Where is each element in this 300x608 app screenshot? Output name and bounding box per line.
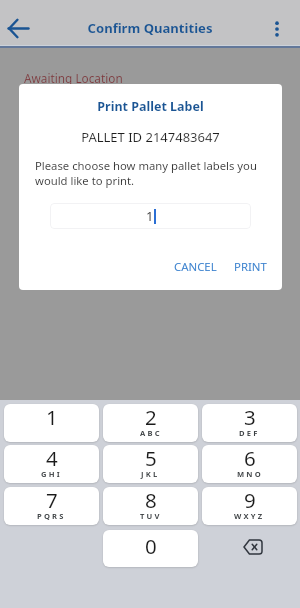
staticText: PQRS (37, 511, 66, 521)
staticText: WXYZ (234, 511, 265, 521)
staticText: Print Pallet Label (19, 98, 282, 115)
staticText: PRINT (234, 259, 267, 275)
staticText: Awaiting Location (24, 70, 123, 86)
staticText: 1 (146, 207, 154, 225)
button[interactable]: 0 (103, 530, 198, 567)
button[interactable]: PRINT (228, 255, 273, 279)
button[interactable]: 8 (103, 487, 198, 525)
staticText: 5 (145, 445, 157, 472)
staticText: 4 (46, 445, 58, 472)
staticText: 3 (244, 404, 256, 431)
button[interactable]: 2 (103, 404, 198, 442)
staticText: MNO (237, 469, 263, 479)
staticText: ABC (140, 428, 162, 438)
staticText: Please choose how many pallet labels you… (35, 158, 259, 188)
staticText: CANCEL (174, 259, 217, 275)
button[interactable]: 7 (4, 487, 99, 525)
staticText: 7 (46, 487, 58, 514)
button[interactable]: 9 (202, 487, 297, 525)
staticText: 8 (145, 487, 157, 514)
button[interactable]: More options (264, 16, 290, 42)
staticText: DEF (239, 428, 260, 438)
button[interactable]: CANCEL (168, 255, 223, 279)
staticText: Confirm Quantities (0, 19, 300, 37)
button[interactable]: 1 (50, 203, 251, 229)
staticText: PALLET ID 2147483647 (19, 128, 282, 146)
staticText: 9 (244, 487, 256, 514)
staticText: 1 (46, 404, 58, 431)
button[interactable]: Backspace (202, 530, 297, 568)
button[interactable]: 5 (103, 445, 198, 483)
staticText: JKL (141, 469, 160, 479)
button[interactable]: Back (3, 13, 33, 43)
button[interactable]: 6 (202, 445, 297, 483)
staticText: 0 (145, 532, 157, 560)
staticText: GHI (41, 469, 62, 479)
staticText: TUV (140, 511, 162, 521)
staticText: 6 (244, 445, 256, 472)
button[interactable]: 3 (202, 404, 297, 442)
button[interactable]: 4 (4, 445, 99, 483)
button[interactable]: 1 (4, 404, 99, 442)
staticText: 2 (145, 404, 157, 431)
